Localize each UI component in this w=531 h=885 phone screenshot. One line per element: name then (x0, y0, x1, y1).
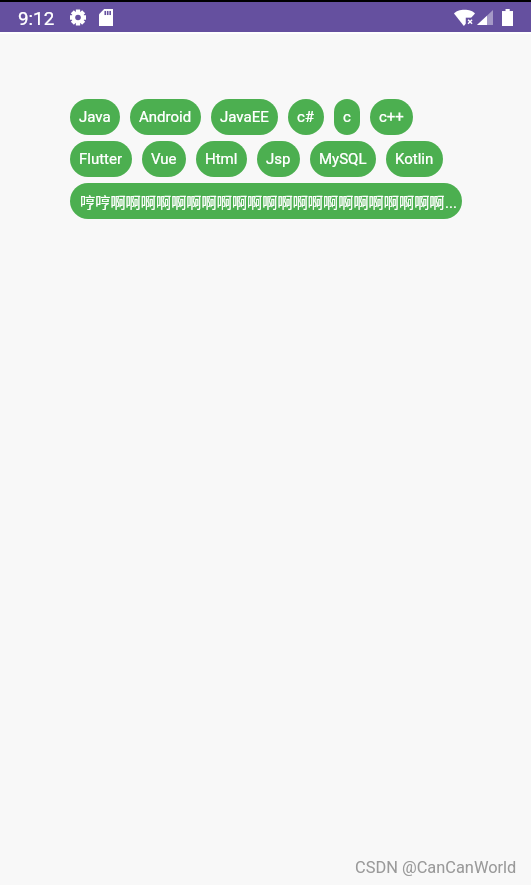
button[interactable]: 哼哼啊啊啊啊啊啊啊啊啊啊啊啊啊啊啊啊啊啊啊啊啊啊 (70, 183, 462, 219)
button[interactable]: Html (196, 141, 247, 177)
staticText: c (343, 108, 351, 126)
staticText: CSDN @CanCanWorld (355, 858, 517, 877)
button[interactable]: MySQL (310, 141, 376, 177)
other: Settings (70, 9, 86, 26)
button[interactable]: Android (130, 99, 201, 135)
staticText: Vue (151, 150, 177, 168)
staticText: Android (139, 108, 192, 126)
staticText: Flutter (79, 150, 123, 168)
staticText: Jsp (266, 150, 291, 168)
button[interactable]: Flutter (70, 141, 132, 177)
staticText: 9:12 (18, 8, 55, 30)
button[interactable]: Kotlin (386, 141, 443, 177)
staticText: JavaEE (220, 108, 269, 126)
staticText: Html (205, 150, 238, 168)
button[interactable]: Vue (142, 141, 186, 177)
staticText: ... (445, 194, 457, 212)
staticText: MySQL (319, 150, 367, 168)
button[interactable]: JavaEE (211, 99, 278, 135)
button[interactable]: c++ (370, 99, 413, 135)
staticText: c# (297, 108, 315, 126)
staticText: Kotlin (395, 150, 434, 168)
other: SD card (99, 9, 113, 26)
other: Wi-Fi disconnected (454, 10, 475, 26)
other: Mobile signal (477, 10, 493, 25)
staticText: c++ (379, 108, 404, 126)
button[interactable]: Java (70, 99, 120, 135)
staticText: Java (79, 108, 111, 126)
other: Battery (502, 9, 513, 26)
staticText: 哼哼啊啊啊啊啊啊啊啊啊啊啊啊啊啊啊啊啊啊啊啊啊啊 (80, 190, 445, 212)
button[interactable]: c (334, 99, 360, 135)
button[interactable]: Jsp (257, 141, 300, 177)
button[interactable]: c# (288, 99, 324, 135)
